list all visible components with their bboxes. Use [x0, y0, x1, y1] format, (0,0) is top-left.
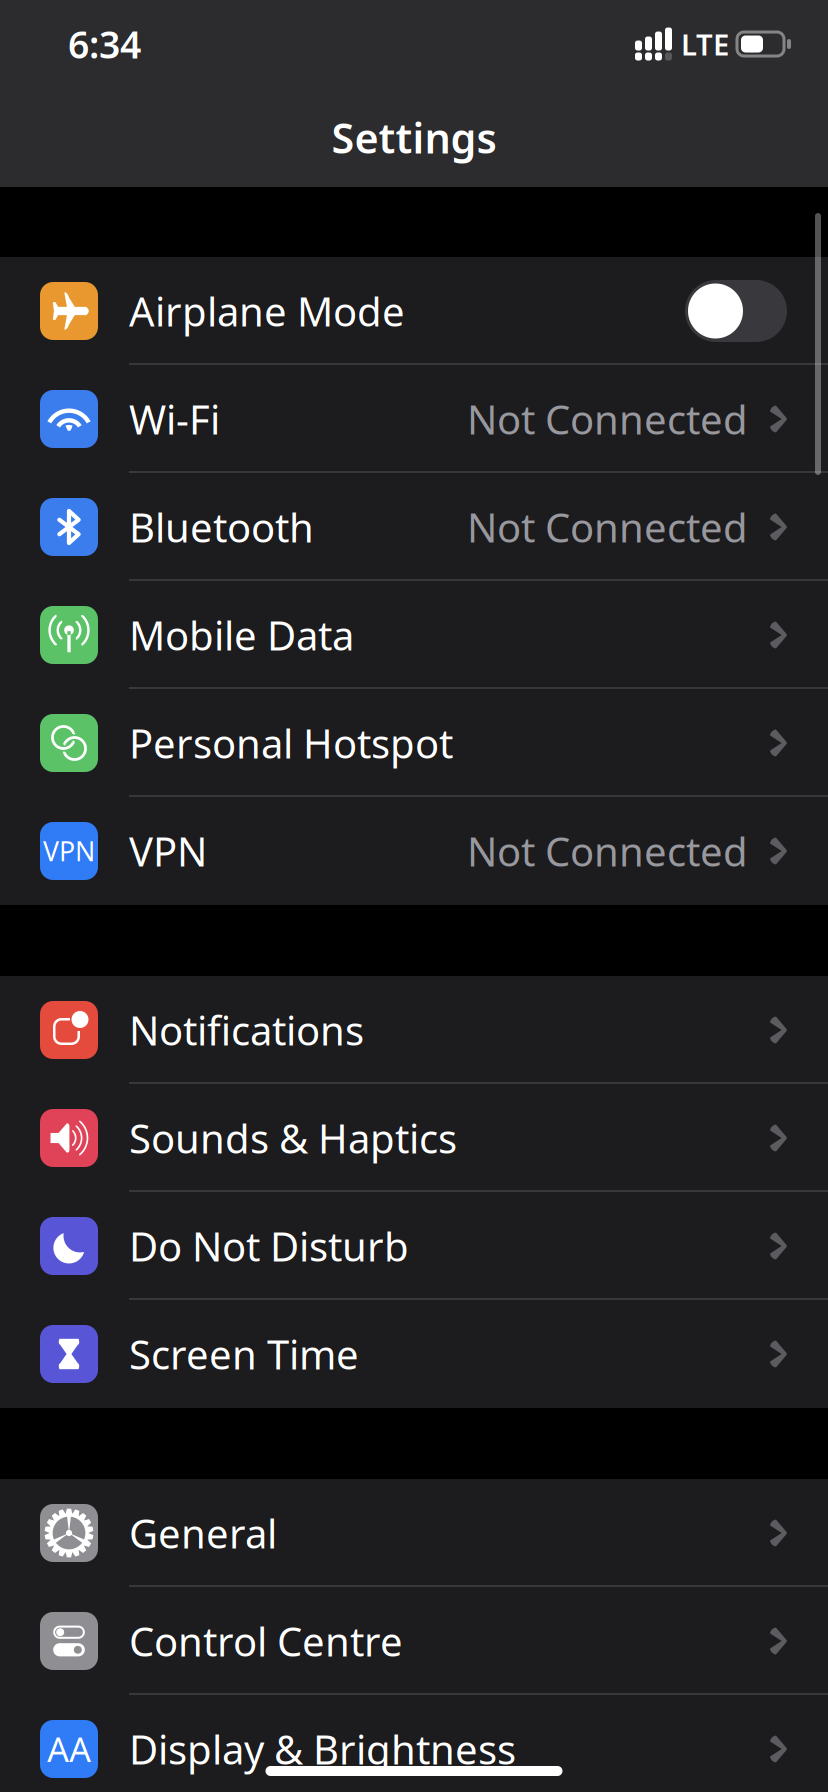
staticText: 6:34: [68, 19, 141, 69]
staticText: Not Connected: [467, 500, 748, 553]
staticText: Airplane Mode: [129, 284, 405, 337]
button[interactable]: Airplane Mode: [0, 257, 828, 365]
staticText: VPN: [43, 833, 95, 869]
button[interactable]: Screen Time: [0, 1300, 828, 1408]
button[interactable]: AA: [0, 1695, 828, 1792]
button[interactable]: Wi-Fi: [0, 365, 828, 473]
button[interactable]: Do Not Disturb: [0, 1192, 828, 1300]
button[interactable]: Control Centre: [0, 1587, 828, 1695]
button[interactable]: General: [0, 1479, 828, 1587]
button[interactable]: Sounds & Haptics: [0, 1084, 828, 1192]
staticText: Screen Time: [129, 1327, 359, 1380]
button[interactable]: Personal Hotspot: [0, 689, 828, 797]
staticText: Not Connected: [467, 392, 748, 445]
staticText: VPN: [129, 824, 207, 877]
button[interactable]: Bluetooth: [0, 473, 828, 581]
button[interactable]: Mobile Data: [0, 581, 828, 689]
staticText: Control Centre: [129, 1614, 403, 1667]
staticText: AA: [47, 1726, 91, 1772]
staticText: Wi-Fi: [129, 392, 220, 445]
staticText: Bluetooth: [129, 500, 314, 553]
button[interactable]: Notifications: [0, 976, 828, 1084]
staticText: Not Connected: [467, 824, 748, 877]
staticText: LTE: [681, 24, 729, 63]
staticText: Do Not Disturb: [129, 1219, 409, 1272]
staticText: Personal Hotspot: [129, 716, 453, 769]
staticText: Settings: [331, 110, 496, 165]
staticText: Notifications: [129, 1003, 364, 1056]
button[interactable]: VPN: [0, 797, 828, 905]
staticText: Sounds & Haptics: [129, 1111, 457, 1164]
staticText: General: [129, 1506, 277, 1559]
staticText: Display & Brightness: [129, 1722, 516, 1775]
staticText: Mobile Data: [129, 608, 354, 661]
